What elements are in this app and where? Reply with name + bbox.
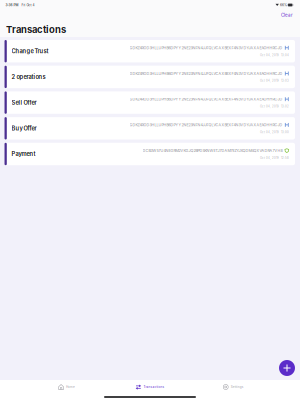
button[interactable]: New transaction (279, 360, 295, 376)
staticText: Change Trust (11, 48, 48, 55)
staticText: GDKZ4ROD3HLLUPHB6DPYY2NE23NFN4JJFQLVCAXB… (129, 97, 282, 101)
button[interactable]: Clear (275, 10, 300, 20)
staticText: Sell Offer (11, 99, 36, 106)
staticText: 66% (279, 3, 288, 7)
staticText: Clear (281, 12, 293, 18)
staticText: Buy Offer (11, 125, 36, 132)
staticText: GCB3W57U4NEGRM2VKGJQ2BPDSKNWETJ7DAM7EZYJ… (142, 148, 282, 153)
staticText: GDKZ4ROD3HLLUPHB6DPYY2NE23NFN4JJFQLVCAXB… (129, 123, 282, 127)
button[interactable]: Change Trust (4, 40, 295, 62)
button[interactable]: 2 operations (4, 66, 295, 88)
staticText: Home (66, 385, 75, 389)
button[interactable]: Home (25, 381, 108, 393)
button[interactable]: Transactions (108, 381, 192, 393)
button[interactable]: Payment (4, 143, 295, 165)
staticText: Transactions (6, 24, 66, 35)
button[interactable]: Settings (192, 381, 275, 393)
staticText: Oct 04, 2019 12:58 (260, 156, 289, 160)
staticText: Oct 04, 2019 13:04 (260, 53, 289, 57)
staticText: Oct 04, 2019 13:03 (260, 79, 289, 82)
staticText: Transactions (143, 385, 164, 389)
staticText: 2 operations (11, 73, 45, 80)
button[interactable]: Buy Offer (4, 117, 295, 139)
staticText: Settings (231, 385, 244, 389)
button[interactable]: Sell Offer (4, 91, 295, 114)
staticText: GDKZ4ROD3HLLUPHB6DPYY2NE23NFN4JJFQLVCAXB… (129, 46, 282, 50)
staticText: Payment (11, 150, 35, 157)
staticText: Oct 04, 2019 13:00 (260, 131, 289, 134)
staticText: Fri Oct 4 (18, 3, 34, 7)
staticText: GDKZ4ROD3HLLUPHB6DPYY2NE23NFN4JJFQLVCAXB… (129, 71, 282, 76)
staticText: Oct 04, 2019 13:02 (260, 105, 289, 108)
staticText: 3:36 PM (5, 3, 18, 7)
